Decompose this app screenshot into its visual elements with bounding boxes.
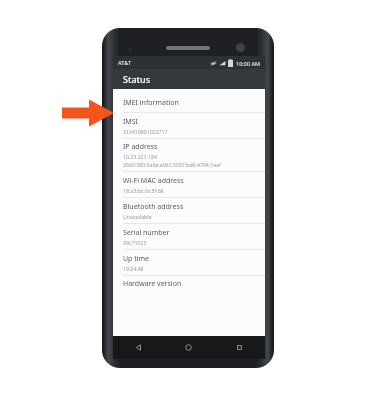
staticText: IMEI information: [123, 98, 179, 108]
staticText: Wi-Fi MAC address: [123, 176, 184, 186]
button[interactable]: IMEI information: [113, 93, 265, 112]
button[interactable]: IMSI: [113, 113, 265, 138]
button[interactable]: Hardware version: [113, 276, 265, 292]
staticText: 10:00 AM: [236, 60, 261, 67]
button[interactable]: Back: [113, 336, 163, 359]
staticText: AT&T: [118, 59, 132, 66]
staticText: 18:a3:bc:0c:5f:68: [123, 187, 164, 194]
button[interactable]: Home: [163, 336, 214, 359]
staticText: Unavailable: [123, 213, 152, 220]
button[interactable]: Status: [113, 69, 265, 89]
staticText: IMSI: [123, 117, 138, 127]
staticText: 10.23.221.184: [123, 153, 157, 160]
other: Pointer to IMEI information: [62, 99, 114, 127]
button[interactable]: Wi-Fi MAC address: [113, 172, 265, 197]
staticText: 310410801022717: [123, 128, 168, 135]
staticText: 19:24:48: [123, 265, 144, 272]
button[interactable]: Recent apps: [214, 336, 265, 359]
staticText: Up time: [123, 254, 150, 264]
button[interactable]: Up time: [113, 250, 265, 275]
button[interactable]: IP address: [113, 139, 265, 171]
staticText: Serial number: [123, 228, 170, 238]
button[interactable]: Bluetooth address: [113, 198, 265, 223]
staticText: Hardware version: [123, 279, 182, 289]
staticText: IP address: [123, 142, 158, 152]
staticText: Bluetooth address: [123, 202, 184, 212]
staticText: 2600:380:5a6e:e062:5037:bd6:4794:1eaf: [123, 161, 221, 168]
staticText: Status: [123, 73, 151, 85]
staticText: 39c71023: [123, 239, 147, 246]
button[interactable]: Serial number: [113, 224, 265, 249]
